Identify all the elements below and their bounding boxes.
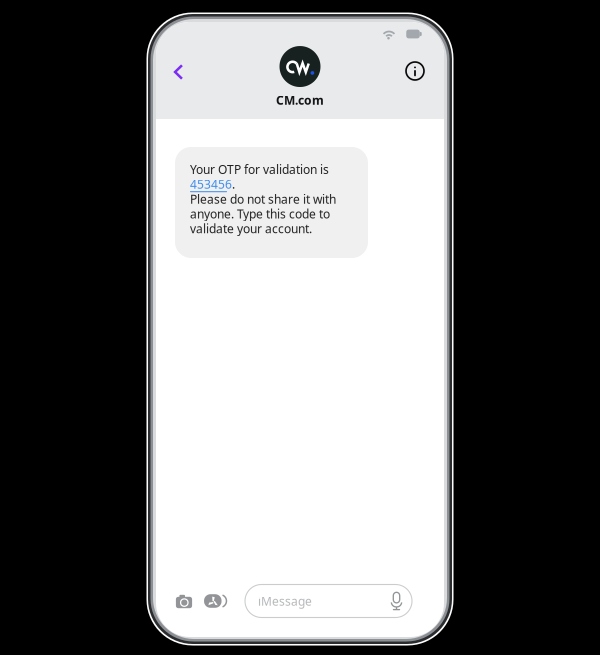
staticText: anyone. Type this code to: [190, 206, 330, 222]
staticText: .: [232, 176, 235, 192]
button[interactable]: Details: [395, 49, 435, 93]
button[interactable]: Back: [159, 50, 197, 94]
staticText: CM.com: [276, 92, 324, 108]
button[interactable]: iMessage: [245, 584, 412, 617]
staticText: Please do not share it with: [190, 191, 336, 207]
staticText: 453456: [190, 176, 232, 192]
staticText: Your OTP for validation is: [190, 161, 329, 177]
button[interactable]: CM.com: [240, 46, 360, 108]
button[interactable]: Apps: [201, 587, 229, 615]
staticText: validate your account.: [190, 221, 312, 236]
button[interactable]: Camera: [171, 587, 197, 615]
staticText: iMessage: [258, 593, 312, 609]
